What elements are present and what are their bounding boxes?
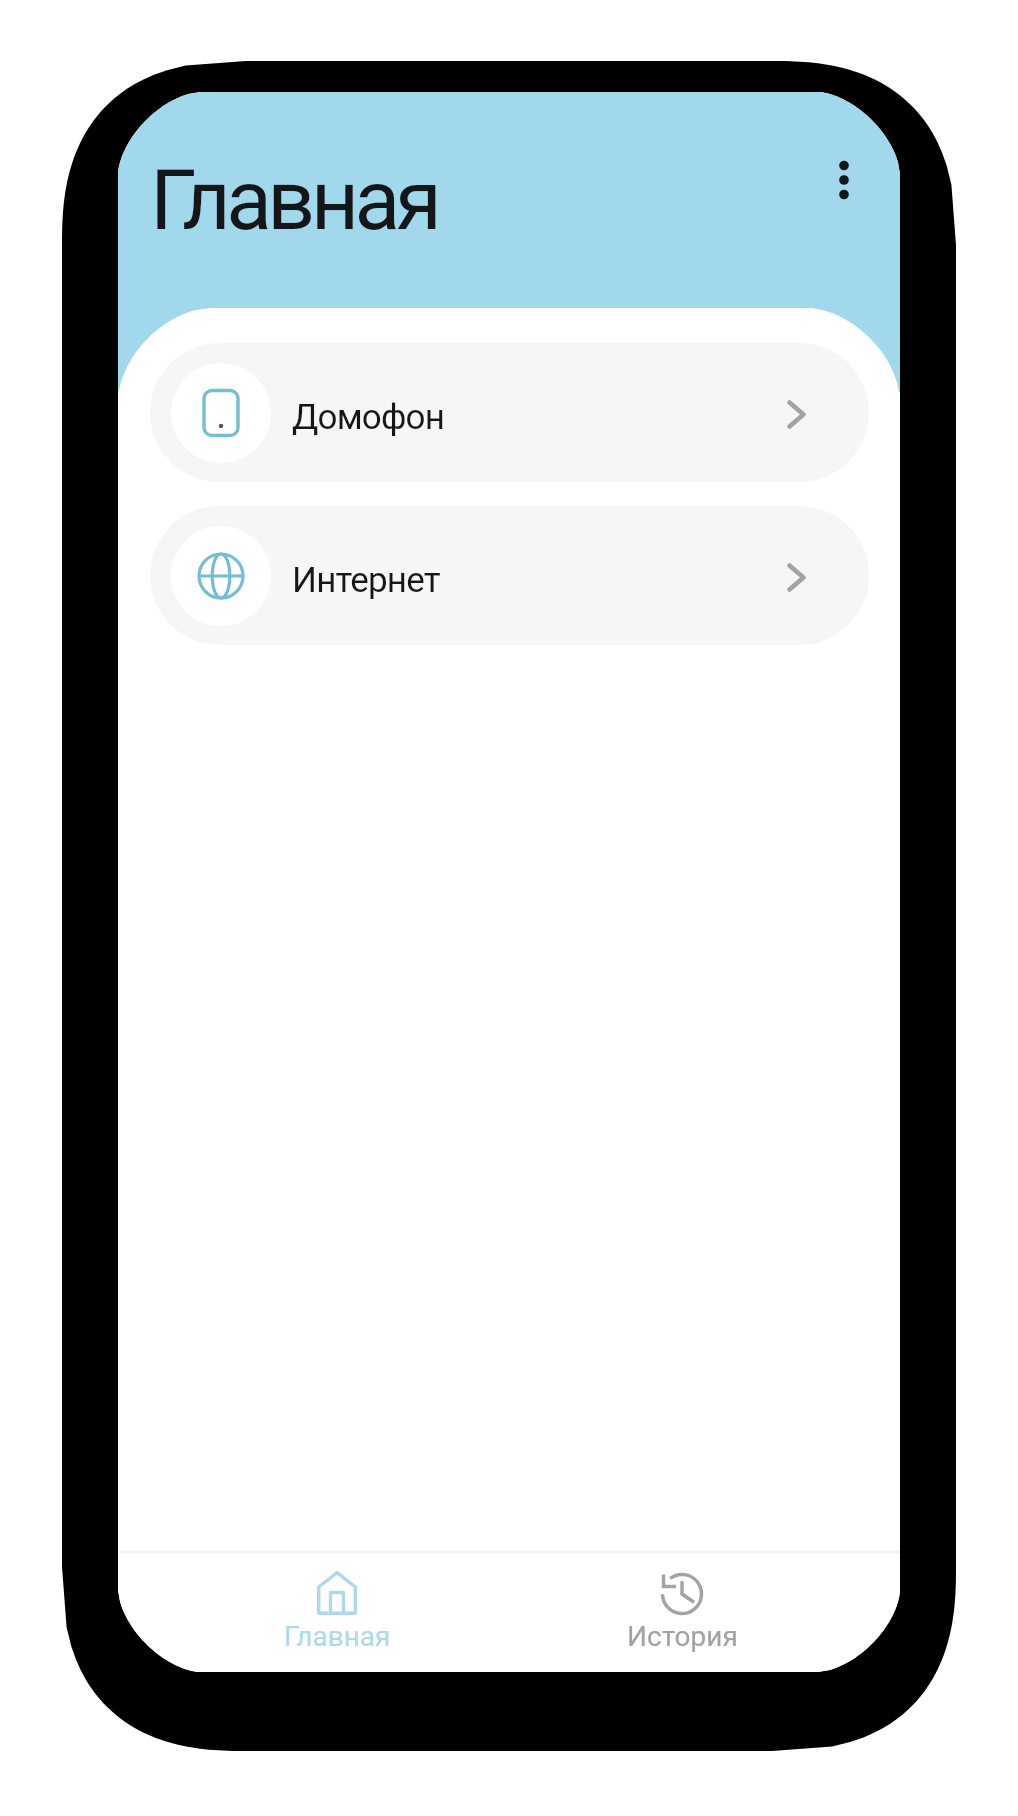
staticText: Интернет bbox=[292, 560, 440, 601]
staticText: История bbox=[627, 1620, 738, 1653]
button[interactable]: Главная bbox=[242, 1561, 432, 1665]
staticText: Главная bbox=[284, 1620, 391, 1653]
staticText: Главная bbox=[150, 151, 438, 249]
button[interactable]: Интернет bbox=[150, 506, 869, 645]
staticText: Домофон bbox=[292, 397, 445, 438]
button[interactable]: More options bbox=[818, 154, 870, 206]
button[interactable]: Домофон bbox=[150, 343, 869, 482]
button[interactable]: История bbox=[587, 1561, 777, 1665]
